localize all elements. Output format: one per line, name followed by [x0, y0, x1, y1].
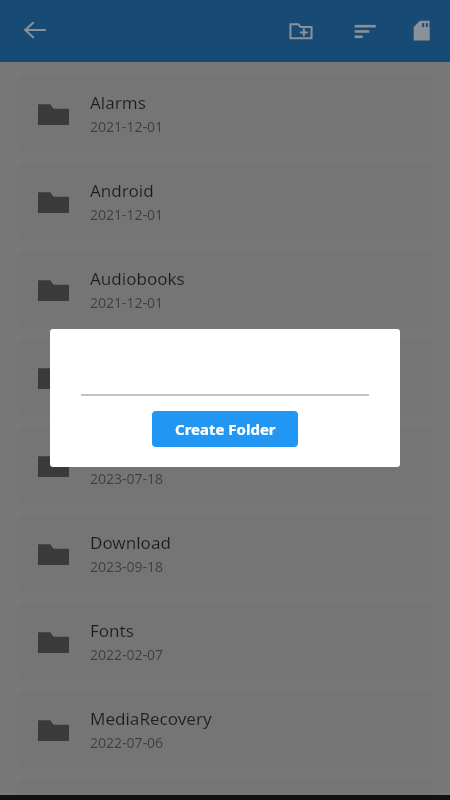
staticText: Android — [90, 179, 154, 202]
button[interactable]: Back — [13, 8, 57, 52]
button[interactable]: Documents — [17, 426, 433, 504]
button[interactable]: Android — [17, 162, 433, 240]
button[interactable]: MediaRecovery — [17, 690, 433, 768]
button[interactable]: Movies — [17, 778, 433, 800]
staticText: 2022-02-07 — [90, 645, 164, 664]
staticText: 2023-09-18 — [90, 557, 164, 576]
staticText: MediaRecovery — [90, 707, 212, 730]
staticText: Alarms — [90, 91, 146, 114]
staticText: Download — [90, 531, 171, 554]
staticText: 2022-07-06 — [90, 733, 164, 752]
button[interactable]: DCIM — [17, 338, 433, 416]
button[interactable]: Alarms — [17, 74, 433, 152]
button[interactable]: Sort — [343, 9, 387, 53]
staticText: 2021-12-01 — [90, 117, 164, 136]
staticText: Create Folder — [175, 419, 276, 439]
button[interactable]: Download — [17, 514, 433, 592]
staticText: Audiobooks — [90, 267, 185, 290]
button[interactable]: Audiobooks — [17, 250, 433, 328]
button[interactable]: New folder — [279, 9, 323, 53]
staticText: 2023-06-02 — [90, 381, 164, 400]
staticText: Fonts — [90, 619, 134, 642]
staticText: 2021-12-01 — [90, 293, 164, 312]
button[interactable]: Fonts — [17, 602, 433, 680]
button[interactable]: SD card — [399, 8, 443, 52]
staticText: 2021-12-01 — [90, 205, 164, 224]
button[interactable]: Create Folder — [152, 411, 298, 447]
staticText: 2023-07-18 — [90, 469, 164, 488]
staticText: Documents — [90, 443, 182, 466]
